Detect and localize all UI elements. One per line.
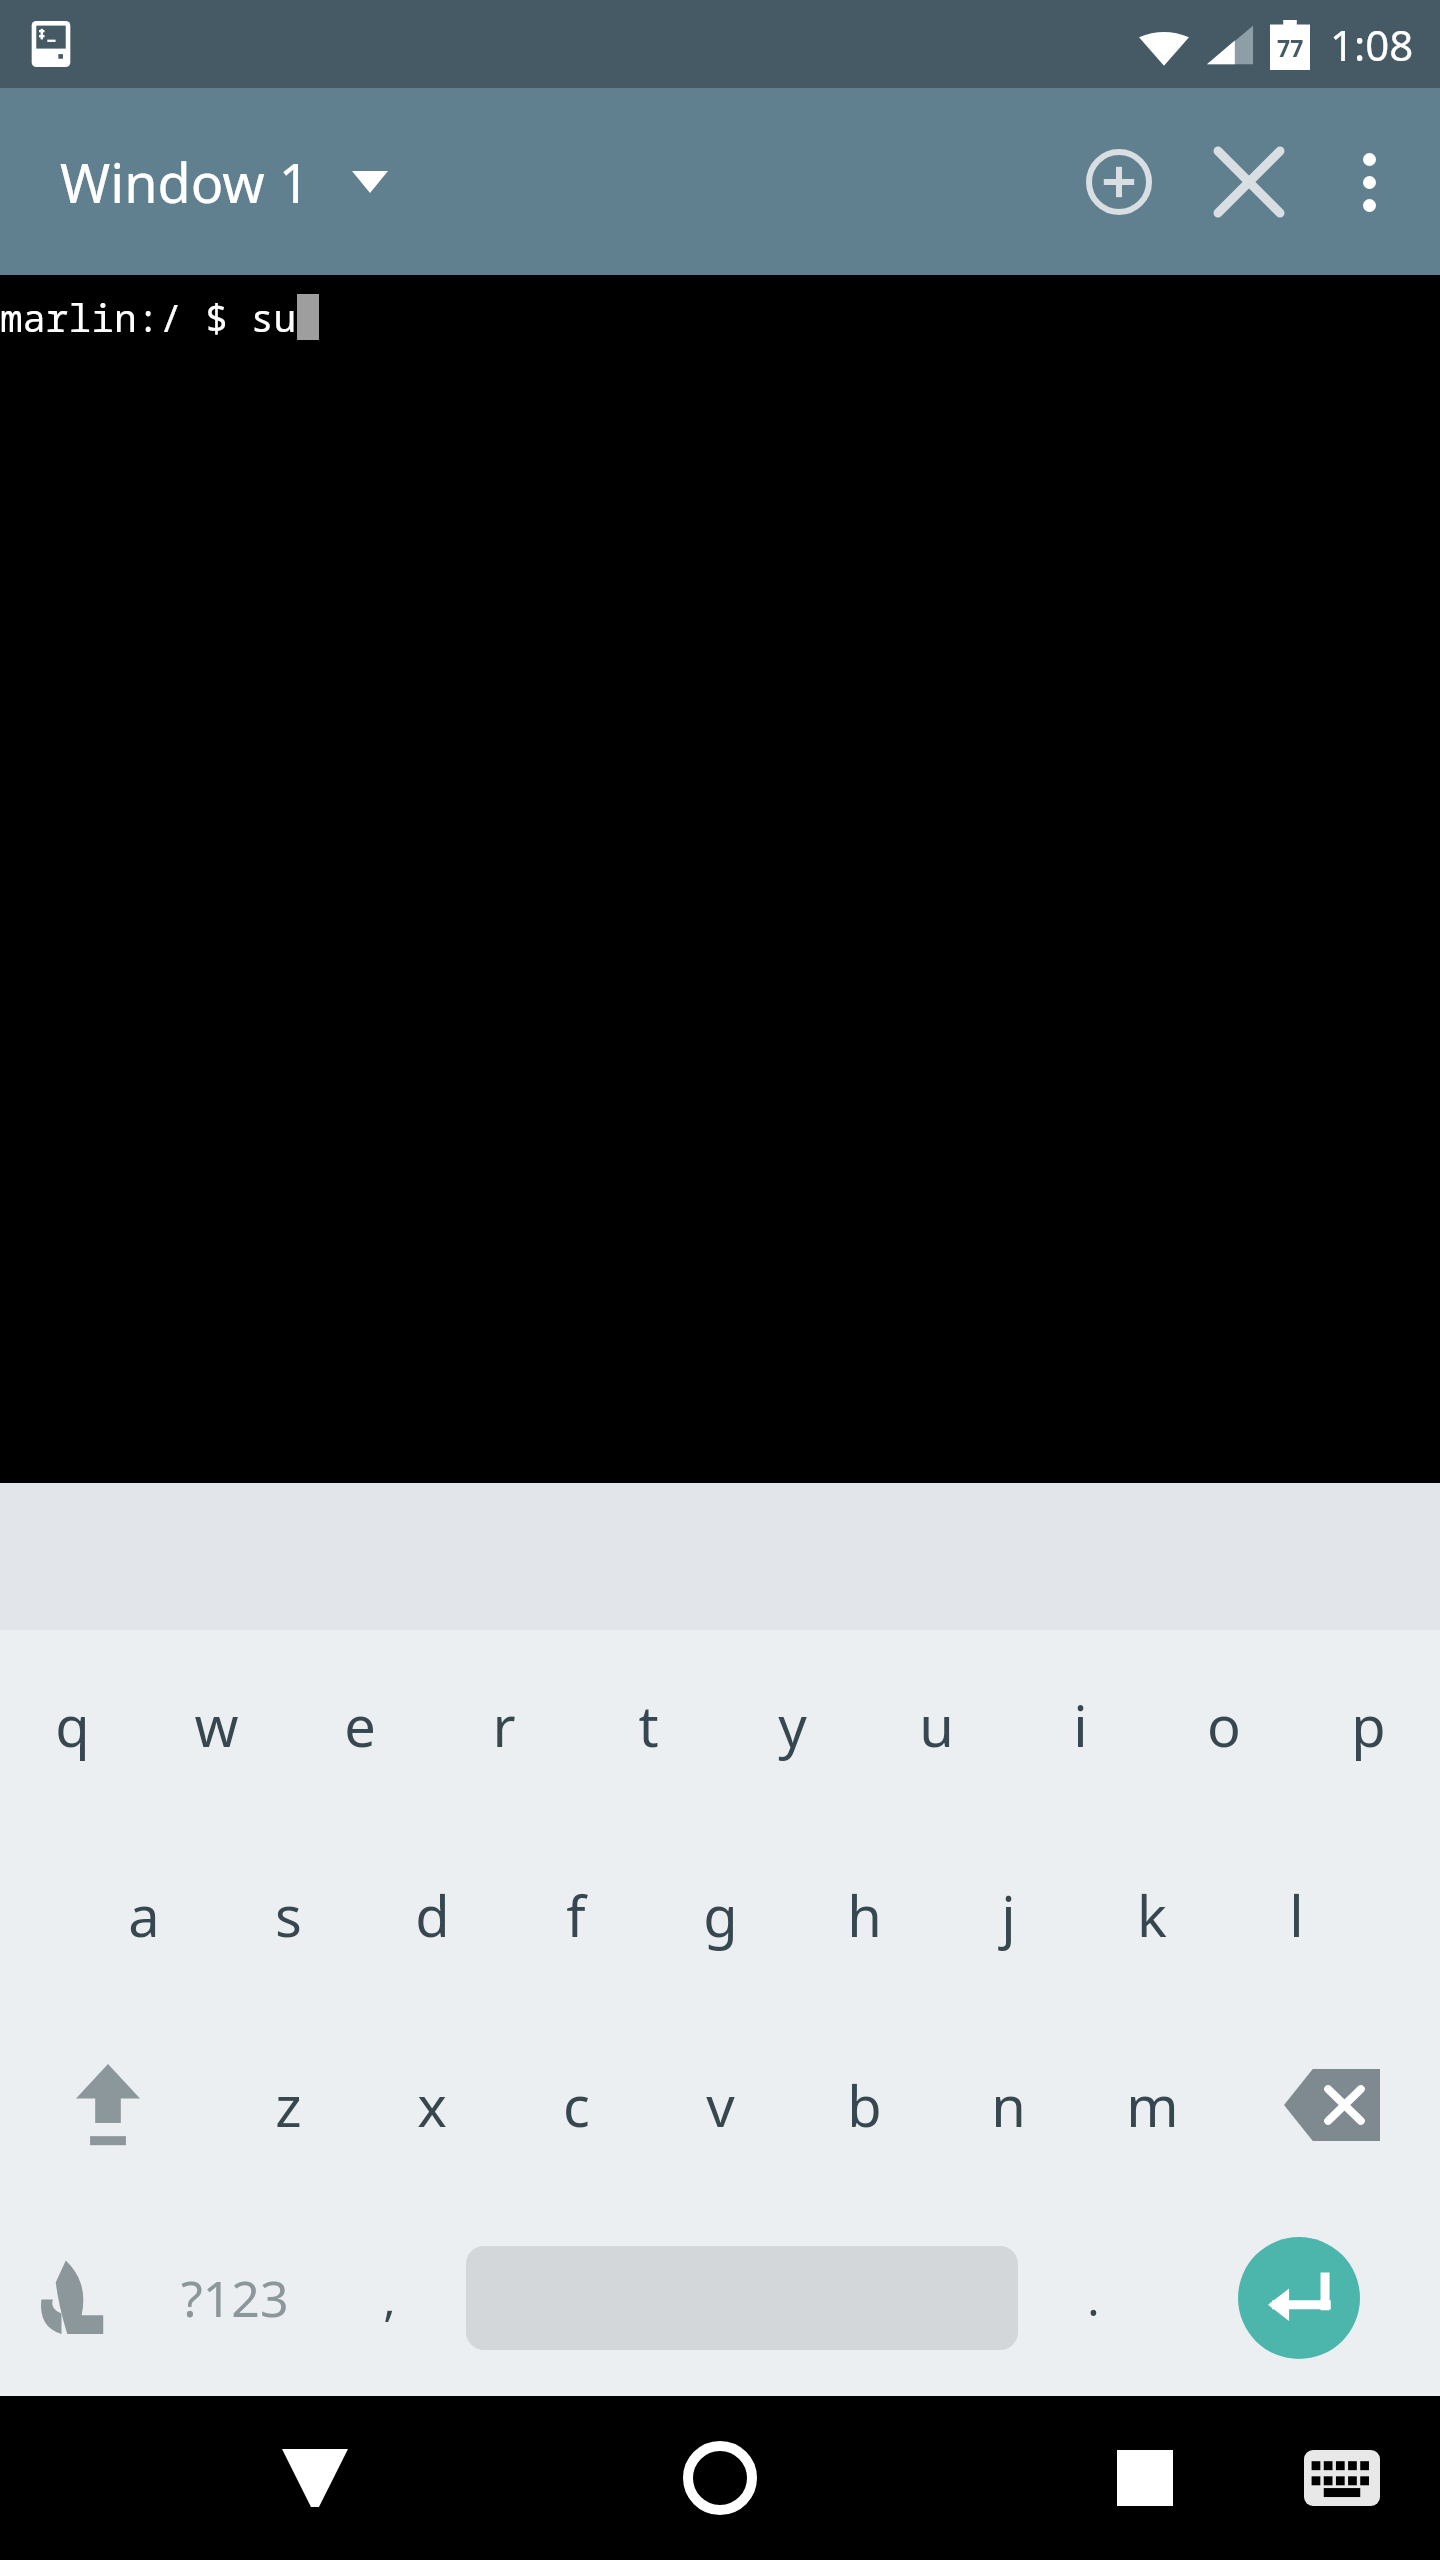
staticText: r — [492, 1687, 516, 1763]
button[interactable]: . — [1029, 2200, 1158, 2396]
button[interactable]: q — [0, 1630, 144, 1820]
button[interactable]: j — [936, 1820, 1080, 2010]
button[interactable]: h — [792, 1820, 936, 2010]
staticText: d — [415, 1877, 450, 1953]
staticText: u — [919, 1687, 954, 1763]
staticText: q — [55, 1687, 90, 1763]
button[interactable]: Home — [645, 2403, 795, 2553]
staticText: b — [847, 2067, 882, 2143]
button[interactable]: o — [1152, 1630, 1296, 1820]
button[interactable]: ?123 — [145, 2200, 325, 2396]
button[interactable]: f — [504, 1820, 648, 2010]
staticText: v — [706, 2067, 735, 2143]
button[interactable]: m — [1080, 2010, 1224, 2200]
staticText: p — [1351, 1687, 1386, 1763]
staticText: 1:08 — [1330, 16, 1414, 73]
staticText: marlin:/ $ su — [0, 291, 297, 343]
staticText: a — [128, 1877, 160, 1953]
button[interactable]: More options — [1314, 127, 1424, 237]
button[interactable]: d — [360, 1820, 504, 2010]
staticText: ?123 — [181, 2264, 289, 2332]
button[interactable]: b — [792, 2010, 936, 2200]
staticText: l — [1289, 1877, 1304, 1953]
staticText: h — [847, 1877, 882, 1953]
staticText: z — [275, 2067, 302, 2143]
staticText: . — [1087, 2267, 1100, 2330]
button[interactable]: e — [288, 1630, 432, 1820]
staticText: c — [563, 2067, 590, 2143]
button[interactable]: a — [72, 1820, 216, 2010]
button[interactable]: marlin:/ $ su — [0, 275, 1440, 1483]
button[interactable]: z — [216, 2010, 360, 2200]
button[interactable]: Window 1 — [0, 129, 408, 235]
button[interactable]: Hide keyboard — [240, 2403, 390, 2553]
staticText: g — [703, 1877, 738, 1953]
staticText: e — [344, 1687, 376, 1763]
staticText: 77 — [1277, 32, 1304, 63]
staticText: j — [1001, 1877, 1016, 1953]
staticText: m — [1126, 2067, 1179, 2143]
staticText: s — [275, 1877, 302, 1953]
button[interactable]: s — [216, 1820, 360, 2010]
staticText: i — [1073, 1687, 1088, 1763]
staticText: k — [1137, 1877, 1167, 1953]
button[interactable]: v — [648, 2010, 792, 2200]
button[interactable]: r — [432, 1630, 576, 1820]
button[interactable]: n — [936, 2010, 1080, 2200]
button[interactable]: c — [504, 2010, 648, 2200]
staticText: Window 1 — [60, 145, 310, 219]
button[interactable]: i — [1008, 1630, 1152, 1820]
button[interactable]: Switch keyboard — [1282, 2418, 1402, 2538]
button[interactable]: t — [576, 1630, 720, 1820]
button[interactable]: Recent apps — [1070, 2403, 1220, 2553]
button[interactable]: Backspace — [1224, 2010, 1440, 2200]
button[interactable]: w — [144, 1630, 288, 1820]
button[interactable]: Enter — [1238, 2237, 1360, 2359]
button[interactable]: Glide typing — [0, 2200, 145, 2396]
button[interactable]: Shift — [0, 2010, 216, 2200]
button[interactable]: y — [720, 1630, 864, 1820]
staticText: t — [638, 1687, 659, 1763]
staticText: n — [991, 2067, 1026, 2143]
staticText: w — [194, 1687, 239, 1763]
button[interactable]: Close window — [1184, 117, 1314, 247]
button[interactable]: , — [325, 2200, 454, 2396]
staticText: , — [383, 2267, 396, 2330]
button[interactable]: g — [648, 1820, 792, 2010]
button[interactable]: p — [1296, 1630, 1440, 1820]
staticText: o — [1207, 1687, 1241, 1763]
staticText: f — [566, 1877, 586, 1953]
button[interactable]: New window — [1054, 117, 1184, 247]
button[interactable]: l — [1224, 1820, 1368, 2010]
button[interactable]: u — [864, 1630, 1008, 1820]
staticText: y — [778, 1687, 807, 1763]
button[interactable]: k — [1080, 1820, 1224, 2010]
button[interactable]: x — [360, 2010, 504, 2200]
staticText: x — [417, 2067, 447, 2143]
